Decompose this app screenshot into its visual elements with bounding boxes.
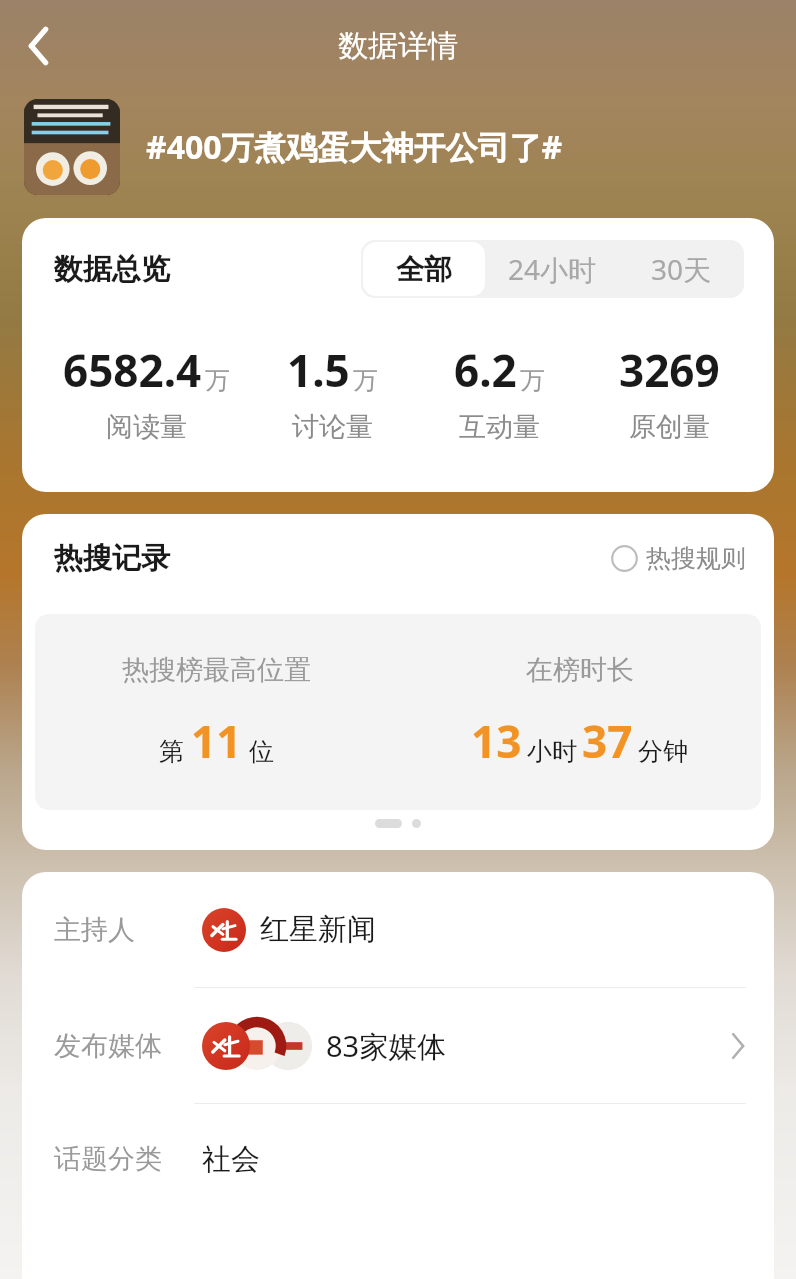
button[interactable]: 发布媒体 bbox=[22, 988, 774, 1103]
staticText: 6582.4 bbox=[63, 340, 202, 400]
button[interactable]: 热搜规则 bbox=[611, 543, 746, 574]
staticText: 24小时 bbox=[508, 250, 597, 288]
button[interactable]: 话题分类 bbox=[22, 1104, 774, 1214]
staticText: 全部 bbox=[396, 252, 452, 287]
staticText: 11 bbox=[191, 711, 242, 771]
staticText: 红星新闻 bbox=[260, 911, 376, 948]
staticText: #400万煮鸡蛋大神开公司了# bbox=[146, 125, 563, 169]
staticText: 数据总览 bbox=[54, 251, 170, 288]
staticText: 分钟 bbox=[638, 736, 688, 767]
staticText: 小时 bbox=[527, 736, 577, 767]
button[interactable]: 全部 bbox=[363, 242, 485, 296]
staticText: 万 bbox=[520, 365, 545, 396]
staticText: 3269 bbox=[619, 340, 720, 400]
staticText: 热搜记录 bbox=[54, 540, 170, 577]
staticText: 阅读量 bbox=[106, 410, 187, 444]
staticText: 83家媒体 bbox=[326, 1026, 447, 1066]
staticText: 1.5 bbox=[287, 340, 350, 400]
staticText: 在榜时长 bbox=[526, 653, 634, 687]
staticText: 数据详情 bbox=[338, 27, 458, 65]
staticText: 发布媒体 bbox=[54, 1029, 194, 1063]
staticText: 37 bbox=[582, 711, 633, 771]
staticText: 互动量 bbox=[459, 410, 540, 444]
staticText: 热搜榜最高位置 bbox=[122, 653, 311, 687]
button[interactable]: 24小时 bbox=[485, 240, 619, 298]
staticText: 13 bbox=[471, 711, 522, 771]
staticText: 万 bbox=[353, 365, 378, 396]
staticText: 6.2 bbox=[454, 340, 517, 400]
staticText: 原创量 bbox=[629, 410, 710, 444]
staticText: 热搜规则 bbox=[646, 543, 746, 574]
button[interactable]: 30天 bbox=[619, 240, 744, 298]
staticText: 万 bbox=[205, 365, 230, 396]
button[interactable]: Back bbox=[8, 15, 70, 77]
staticText: 位 bbox=[249, 736, 274, 767]
staticText: 主持人 bbox=[54, 913, 194, 947]
staticText: 社会 bbox=[202, 1141, 260, 1178]
staticText: 30天 bbox=[651, 250, 712, 288]
staticText: 话题分类 bbox=[54, 1142, 194, 1176]
button[interactable]: 主持人 bbox=[22, 872, 774, 987]
staticText: 讨论量 bbox=[292, 410, 373, 444]
staticText: 第 bbox=[159, 736, 184, 767]
